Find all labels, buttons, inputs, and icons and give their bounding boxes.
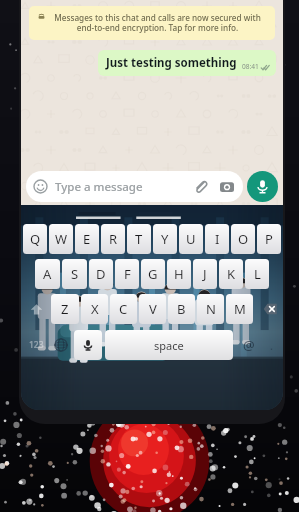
staticText: A bbox=[43, 265, 52, 283]
staticText: Q bbox=[30, 230, 41, 248]
button[interactable]: Q bbox=[23, 224, 47, 254]
button[interactable]: Voice message bbox=[247, 171, 278, 202]
staticText: Y bbox=[161, 230, 169, 248]
staticText: D bbox=[96, 265, 106, 283]
staticText: X bbox=[91, 300, 99, 318]
staticText: O bbox=[238, 230, 249, 248]
staticText: S bbox=[71, 265, 79, 283]
staticText: H bbox=[174, 265, 184, 283]
button[interactable]: Emoji bbox=[26, 171, 243, 202]
button[interactable]: E bbox=[75, 224, 99, 254]
staticText: V bbox=[149, 300, 157, 318]
button[interactable]: T bbox=[127, 224, 151, 254]
staticText: Z bbox=[61, 300, 69, 318]
button[interactable]: P bbox=[257, 224, 281, 254]
staticText: Type a message bbox=[55, 179, 143, 195]
staticText: 08:41 bbox=[242, 62, 259, 71]
button[interactable]: . bbox=[262, 330, 280, 360]
staticText: L bbox=[254, 265, 261, 283]
staticText: 123 bbox=[29, 339, 44, 351]
button[interactable]: 123 bbox=[24, 330, 48, 360]
staticText: G bbox=[148, 265, 158, 283]
button[interactable]: V bbox=[139, 294, 166, 324]
button[interactable]: U bbox=[179, 224, 203, 254]
staticText: N bbox=[206, 300, 216, 318]
staticText: E bbox=[83, 230, 91, 248]
button[interactable]: X bbox=[81, 294, 108, 324]
staticText: B bbox=[177, 300, 186, 318]
staticText: I bbox=[215, 230, 220, 248]
staticText: F bbox=[124, 265, 131, 283]
staticText: Messages to this chat and calls are now … bbox=[49, 12, 266, 34]
button[interactable]: D bbox=[89, 259, 113, 289]
button[interactable]: B bbox=[168, 294, 195, 324]
button[interactable]: O bbox=[231, 224, 255, 254]
button[interactable]: J bbox=[193, 259, 217, 289]
staticText: space bbox=[154, 338, 184, 353]
button[interactable]: M bbox=[226, 294, 253, 324]
staticText: U bbox=[186, 230, 196, 248]
staticText: W bbox=[55, 230, 68, 248]
button[interactable]: N bbox=[197, 294, 224, 324]
staticText: Just testing something bbox=[106, 55, 237, 71]
button[interactable]: Change language bbox=[48, 330, 74, 360]
button[interactable]: Voice input bbox=[74, 330, 102, 360]
staticText: K bbox=[227, 265, 236, 283]
staticText: P bbox=[265, 230, 273, 248]
button[interactable]: F bbox=[115, 259, 139, 289]
button[interactable]: @ bbox=[236, 330, 262, 360]
button[interactable]: space bbox=[105, 330, 233, 360]
staticText: R bbox=[109, 230, 118, 248]
button[interactable]: A bbox=[35, 259, 60, 289]
other: Camera bbox=[220, 180, 234, 194]
staticText: J bbox=[203, 265, 207, 283]
button[interactable]: Shift bbox=[23, 294, 49, 324]
button[interactable]: H bbox=[167, 259, 191, 289]
button[interactable]: L bbox=[245, 259, 269, 289]
staticText: C bbox=[119, 300, 128, 318]
button[interactable]: Backspace bbox=[255, 294, 281, 324]
button[interactable]: W bbox=[49, 224, 73, 254]
staticText: . bbox=[270, 338, 273, 353]
button[interactable]: G bbox=[141, 259, 165, 289]
button[interactable]: I bbox=[205, 224, 229, 254]
button[interactable]: R bbox=[101, 224, 125, 254]
other: Emoji bbox=[33, 179, 48, 194]
other: Attach bbox=[193, 179, 208, 194]
button[interactable]: Just testing something bbox=[98, 50, 276, 76]
button[interactable]: Y bbox=[153, 224, 177, 254]
button[interactable]: K bbox=[219, 259, 243, 289]
button[interactable]: C bbox=[110, 294, 137, 324]
staticText: @ bbox=[243, 336, 255, 354]
button[interactable]: S bbox=[62, 259, 87, 289]
staticText: T bbox=[135, 230, 143, 248]
button[interactable]: Z bbox=[51, 294, 79, 324]
staticText: M bbox=[234, 300, 246, 318]
button[interactable]: Messages to this chat and calls are now … bbox=[29, 6, 275, 40]
